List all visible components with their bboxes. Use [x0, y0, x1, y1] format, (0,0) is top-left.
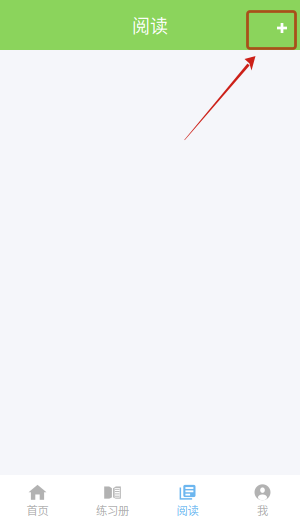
- staticText: 练习册: [96, 502, 129, 518]
- button[interactable]: 练习册: [75, 475, 150, 519]
- staticText: 首页: [26, 502, 48, 518]
- button[interactable]: 我: [225, 475, 300, 519]
- staticText: 阅读: [132, 12, 168, 38]
- button[interactable]: Add: [250, 6, 298, 44]
- staticText: 阅读: [176, 502, 198, 518]
- button[interactable]: 首页: [0, 475, 75, 519]
- button[interactable]: 阅读: [150, 475, 225, 519]
- staticText: 我: [257, 502, 268, 518]
